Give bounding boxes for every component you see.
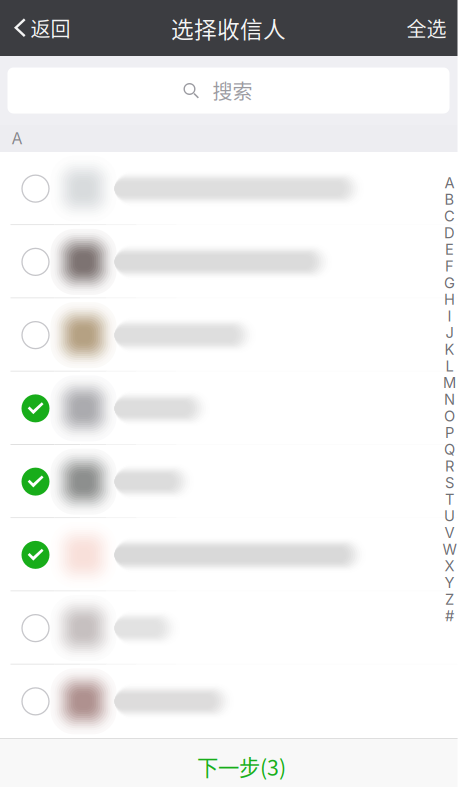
button[interactable]	[0, 591, 457, 665]
button[interactable]	[0, 445, 457, 518]
button[interactable]: 全选	[394, 0, 457, 56]
button[interactable]	[0, 518, 457, 591]
staticText: S	[445, 474, 454, 491]
staticText: N	[444, 390, 455, 408]
staticText: #	[445, 607, 454, 625]
staticText: F	[445, 257, 454, 275]
staticText: G	[444, 274, 455, 292]
staticText: A	[11, 129, 22, 148]
staticText: E	[445, 241, 454, 258]
staticText: Q	[444, 440, 455, 458]
staticText: Y	[444, 574, 454, 591]
staticText: J	[445, 324, 453, 342]
button[interactable]	[0, 152, 457, 225]
staticText: K	[444, 341, 454, 358]
button[interactable]	[0, 665, 457, 738]
staticText: P	[445, 424, 454, 442]
staticText: 搜索	[212, 76, 252, 105]
staticText: I	[447, 307, 451, 325]
staticText: U	[444, 507, 455, 525]
staticText: L	[445, 357, 453, 375]
staticText: V	[444, 524, 454, 541]
staticText: O	[444, 407, 455, 425]
button[interactable]: 下一步(3)	[0, 738, 457, 787]
staticText: T	[445, 490, 454, 508]
button[interactable]: 返回	[0, 0, 82, 56]
staticText: D	[444, 224, 455, 242]
staticText: 返回	[30, 13, 70, 42]
button[interactable]	[0, 225, 457, 298]
button[interactable]	[0, 298, 457, 372]
staticText: M	[443, 374, 456, 392]
staticText: 全选	[406, 13, 446, 42]
staticText: A	[444, 174, 454, 192]
button[interactable]	[0, 372, 457, 445]
staticText: Z	[445, 590, 454, 608]
button[interactable]: 搜索	[7, 67, 449, 113]
staticText: C	[444, 207, 455, 225]
staticText: X	[444, 557, 454, 575]
staticText: 选择收信人	[171, 12, 286, 44]
staticText: W	[442, 540, 456, 558]
staticText: B	[444, 191, 454, 208]
staticText: R	[445, 457, 454, 475]
staticText: 下一步(3)	[197, 751, 286, 782]
staticText: H	[444, 291, 455, 308]
